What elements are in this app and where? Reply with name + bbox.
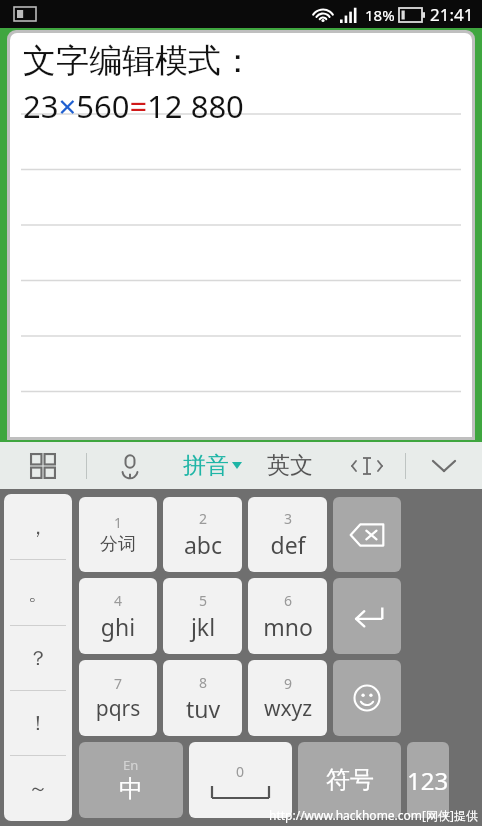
staticText: ， [28, 515, 48, 540]
staticText: 3 [284, 509, 293, 528]
staticText: 1 [114, 513, 123, 532]
staticText: http://www.hackhome.com[网侠]提供 [269, 807, 478, 823]
button[interactable]: 5 [163, 578, 242, 654]
staticText: ？ [28, 646, 48, 671]
button[interactable]: ！ [4, 691, 72, 756]
staticText: 0 [236, 762, 245, 781]
staticText: mno [257, 611, 319, 642]
button[interactable]: Move cursor [329, 442, 405, 489]
staticText: 123 [407, 764, 449, 797]
button[interactable]: Keyboard layouts [0, 442, 86, 489]
staticText: ！ [28, 711, 48, 736]
staticText: ～ [28, 776, 48, 801]
staticText: 拼音 [183, 451, 229, 480]
staticText: En [123, 756, 139, 774]
button[interactable]: ～ [4, 756, 72, 821]
button[interactable]: Enter [333, 578, 401, 654]
button[interactable]: 9 [248, 660, 327, 736]
button[interactable]: 6 [248, 578, 327, 654]
staticText: pqrs [87, 694, 149, 723]
staticText: 6 [284, 591, 293, 610]
staticText: def [257, 529, 319, 560]
staticText: 。 [28, 581, 48, 606]
button[interactable]: 123 [407, 742, 449, 818]
button[interactable]: Hide keyboard [406, 442, 482, 489]
button[interactable]: 3 [248, 497, 327, 572]
button[interactable]: 。 [4, 560, 72, 626]
staticText: 23×560=12 880 [23, 85, 244, 127]
button[interactable]: 1 [79, 497, 157, 572]
staticText: 符号 [326, 765, 374, 795]
staticText: 7 [114, 674, 123, 693]
button[interactable]: 8 [163, 660, 242, 736]
staticText: ghi [87, 611, 149, 642]
staticText: 文字编辑模式： [23, 40, 254, 82]
button[interactable]: Voice input [87, 442, 173, 489]
button[interactable]: 2 [163, 497, 242, 572]
staticText: 4 [114, 591, 123, 610]
staticText: 中 [119, 774, 143, 804]
staticText: 9 [284, 674, 293, 693]
staticText: 英文 [267, 451, 313, 480]
button[interactable]: 符号 [298, 742, 401, 818]
staticText: 18% [365, 5, 395, 25]
staticText: 5 [199, 591, 208, 610]
button[interactable]: Backspace [333, 497, 401, 572]
staticText: abc [172, 529, 234, 560]
button[interactable]: ？ [4, 626, 72, 691]
staticText: 8 [199, 673, 208, 692]
button[interactable]: En [79, 742, 183, 818]
button[interactable]: Emoji [333, 660, 401, 736]
staticText: wxyz [257, 694, 319, 723]
staticText: jkl [172, 611, 234, 642]
staticText: 分词 [87, 533, 149, 556]
button[interactable]: 拼音 [173, 442, 251, 489]
staticText: tuv [172, 693, 234, 724]
staticText: 21:41 [430, 3, 474, 26]
button[interactable]: 4 [79, 578, 157, 654]
staticText: 2 [199, 509, 208, 528]
button[interactable]: 7 [79, 660, 157, 736]
button[interactable]: 0 [189, 742, 292, 818]
button[interactable]: ， [4, 494, 72, 560]
button[interactable]: 英文 [251, 442, 329, 489]
